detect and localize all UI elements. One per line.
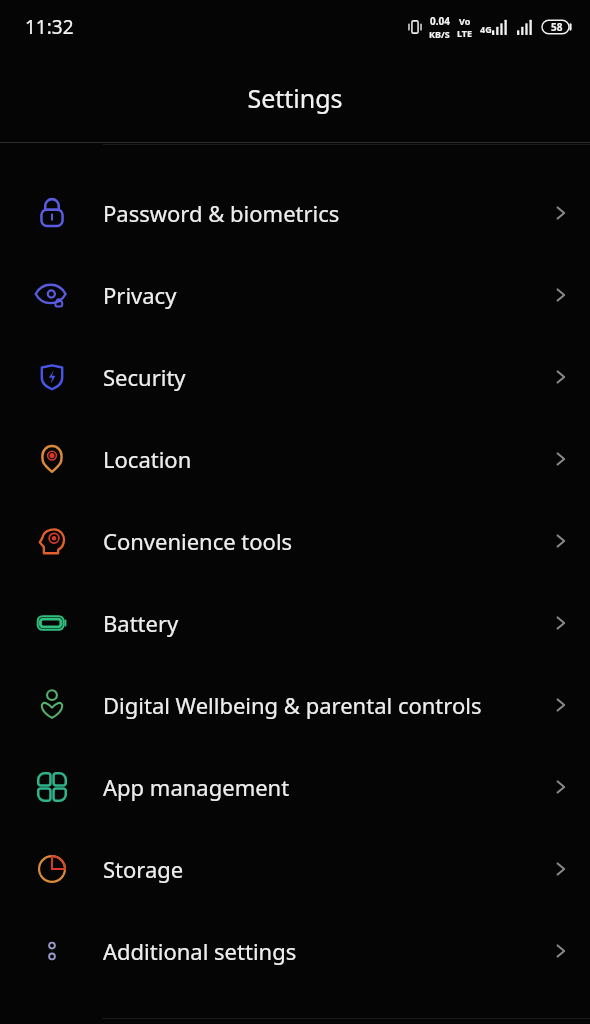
button[interactable]: Security xyxy=(0,336,590,418)
staticText: Location xyxy=(103,444,532,474)
staticText: 58 xyxy=(551,20,563,34)
staticText: Password & biometrics xyxy=(103,198,532,228)
staticText: Digital Wellbeing & parental controls xyxy=(103,690,532,720)
button[interactable]: Convenience tools xyxy=(0,500,590,582)
staticText: LTE xyxy=(457,27,473,39)
staticText: Security xyxy=(103,362,532,392)
staticText: Additional settings xyxy=(103,936,532,966)
staticText: 11:32 xyxy=(25,14,74,40)
staticText: Privacy xyxy=(103,280,532,310)
staticText: 4G xyxy=(480,23,492,35)
staticText: App management xyxy=(103,772,532,802)
staticText: Settings xyxy=(247,81,343,115)
staticText: KB/S xyxy=(429,28,450,40)
button[interactable]: Battery xyxy=(0,582,590,664)
button[interactable]: Password & biometrics xyxy=(0,172,590,254)
staticText: Battery xyxy=(103,608,532,638)
button[interactable]: Digital Wellbeing & parental controls xyxy=(0,664,590,746)
staticText: 0.04 xyxy=(430,14,450,28)
staticText: Convenience tools xyxy=(103,526,532,556)
button[interactable]: Privacy xyxy=(0,254,590,336)
button[interactable]: Location xyxy=(0,418,590,500)
button[interactable]: App management xyxy=(0,746,590,828)
button[interactable]: Additional settings xyxy=(0,910,590,992)
button[interactable]: Storage xyxy=(0,828,590,910)
staticText: Vo xyxy=(459,15,471,27)
staticText: Storage xyxy=(103,854,532,884)
